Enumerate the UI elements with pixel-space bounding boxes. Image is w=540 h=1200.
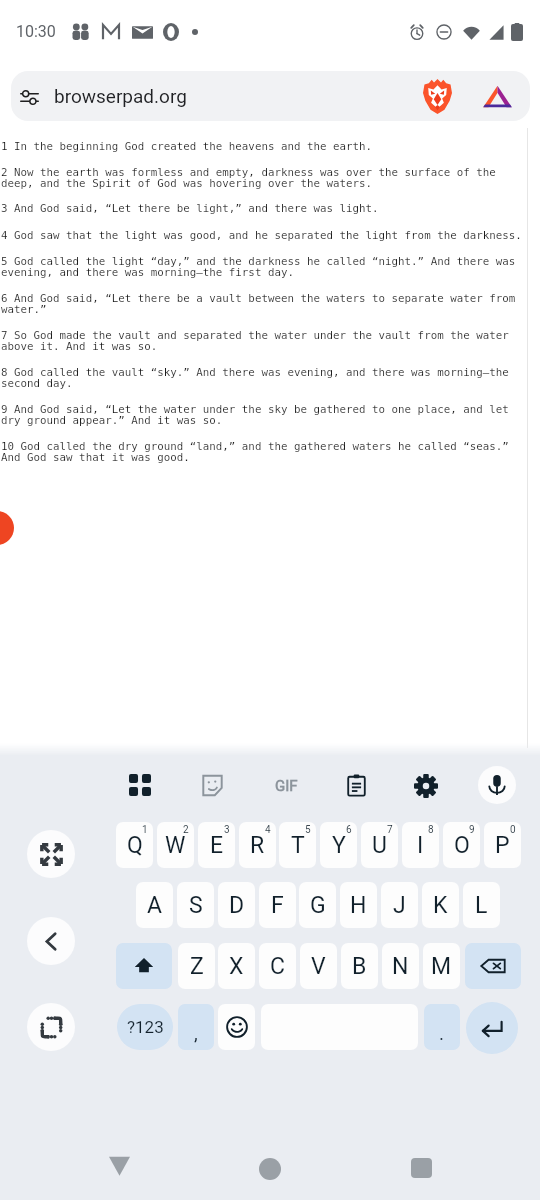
button[interactable]: ?123 <box>117 1004 173 1050</box>
staticText: L <box>475 892 488 919</box>
staticText: ?123 <box>127 1017 164 1037</box>
staticText: 2 Now the earth was formless and empty, … <box>1 166 529 189</box>
staticText: Q <box>127 832 143 859</box>
button[interactable]: Z <box>178 943 215 989</box>
staticText: P <box>495 832 510 859</box>
button[interactable]: Brave Shields <box>414 73 460 119</box>
staticText: 1 <box>142 824 148 836</box>
button[interactable]: Voice input <box>478 766 516 804</box>
staticText: 8 <box>428 824 434 836</box>
staticText: 4 <box>265 824 271 836</box>
staticText: M <box>431 953 452 980</box>
staticText: V <box>311 953 326 980</box>
button[interactable]: P <box>484 822 521 868</box>
button[interactable]: T <box>279 822 316 868</box>
staticText: browserpad.org <box>54 85 187 107</box>
staticText: H <box>350 892 367 919</box>
button[interactable]: Home <box>246 1145 294 1193</box>
button[interactable]: K <box>422 882 459 928</box>
staticText: . <box>439 1022 445 1044</box>
staticText: W <box>165 832 186 859</box>
staticText: C <box>270 953 285 980</box>
staticText: 9 <box>469 824 475 836</box>
staticText: 8 God called the vault “sky.” And there … <box>1 366 529 389</box>
staticText: 5 <box>305 824 311 836</box>
staticText: 7 <box>387 824 393 836</box>
button[interactable]: GIF <box>269 777 303 795</box>
staticText: I <box>417 832 424 859</box>
button[interactable]: J <box>381 882 418 928</box>
button[interactable] <box>218 1004 255 1050</box>
button[interactable]: X <box>218 943 255 989</box>
button[interactable]: M <box>423 943 460 989</box>
staticText: O <box>454 832 470 859</box>
staticText: U <box>372 832 387 859</box>
button[interactable]: S <box>177 882 214 928</box>
staticText: 6 And God said, “Let there be a vault be… <box>1 292 529 315</box>
staticText: 10 God called the dry ground “land,” and… <box>1 440 529 463</box>
button[interactable]: , <box>178 1004 214 1050</box>
staticText: 2 <box>183 824 189 836</box>
staticText: E <box>210 832 224 859</box>
button[interactable]: A <box>136 882 173 928</box>
button[interactable]: C <box>259 943 296 989</box>
button[interactable]: L <box>463 882 500 928</box>
button[interactable]: Q <box>116 822 153 868</box>
staticText: 6 <box>346 824 352 836</box>
staticText: D <box>229 892 245 919</box>
staticText: 1 In the beginning God created the heave… <box>1 140 529 153</box>
staticText: 5 God called the light “day,” and the da… <box>1 255 529 278</box>
staticText: K <box>433 892 448 919</box>
staticText: 7 So God made the vault and separated th… <box>1 329 529 352</box>
button[interactable]: E <box>198 822 235 868</box>
staticText: Z <box>190 953 204 980</box>
button[interactable]: . <box>424 1004 460 1050</box>
staticText: X <box>229 953 244 980</box>
button[interactable]: Enter <box>466 1002 518 1054</box>
button[interactable]: Expand <box>27 830 75 878</box>
staticText: F <box>271 892 284 919</box>
button[interactable]: F <box>259 882 296 928</box>
button[interactable]: V <box>300 943 337 989</box>
button[interactable]: Recents <box>397 1144 445 1192</box>
staticText: T <box>291 832 305 859</box>
button[interactable]: H <box>340 882 377 928</box>
button[interactable]: R <box>239 822 276 868</box>
button[interactable]: Apps <box>129 774 151 796</box>
button[interactable]: Clipboard <box>345 774 368 797</box>
button[interactable]: browserpad.org <box>11 71 530 121</box>
staticText: 9 And God said, “Let the water under the… <box>1 403 529 426</box>
staticText: J <box>393 892 406 919</box>
button[interactable] <box>116 943 172 989</box>
button[interactable]: G <box>299 882 336 928</box>
button[interactable]: Scroll to top <box>0 511 14 545</box>
staticText: 0 <box>510 824 516 836</box>
button[interactable]: W <box>157 822 194 868</box>
staticText: N <box>392 953 409 980</box>
button[interactable] <box>465 943 521 989</box>
staticText: B <box>352 953 367 980</box>
button[interactable]: B <box>341 943 378 989</box>
staticText: R <box>250 832 265 859</box>
button[interactable]: Stickers <box>201 774 224 797</box>
staticText: A <box>147 892 163 919</box>
button[interactable]: D <box>218 882 255 928</box>
button[interactable]: Back <box>95 1142 143 1190</box>
staticText: G <box>310 892 326 919</box>
button[interactable]: Select <box>27 1003 75 1051</box>
button[interactable]: O <box>443 822 480 868</box>
staticText: GIF <box>275 777 298 795</box>
button[interactable]: N <box>382 943 419 989</box>
button[interactable]: U <box>361 822 398 868</box>
staticText: 10:30 <box>16 22 56 41</box>
button[interactable]: Back <box>27 917 75 965</box>
button[interactable]: Settings <box>414 774 438 798</box>
staticText: Y <box>332 832 346 859</box>
staticText: 3 And God said, “Let there be light,” an… <box>1 202 529 215</box>
staticText: S <box>189 892 203 919</box>
button[interactable]: Y <box>320 822 357 868</box>
staticText: 4 God saw that the light was good, and h… <box>1 229 529 242</box>
button[interactable]: Brave Rewards <box>474 73 520 119</box>
button[interactable]: I <box>402 822 439 868</box>
